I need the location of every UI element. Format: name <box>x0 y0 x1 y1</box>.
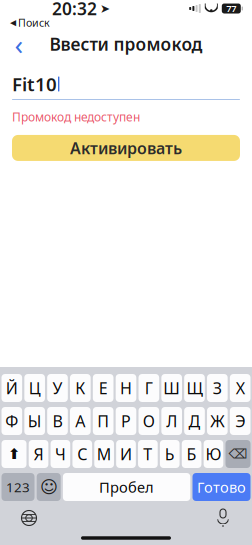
button[interactable]: Р <box>116 407 136 435</box>
button[interactable]: Я <box>29 440 48 468</box>
button[interactable]: Э <box>230 407 250 435</box>
staticText: О <box>143 410 155 432</box>
staticText: Ю <box>205 443 221 465</box>
button[interactable]: П <box>93 407 113 435</box>
button[interactable]: Г <box>138 374 159 402</box>
staticText: Т <box>143 443 152 465</box>
button[interactable]: Пробел <box>63 473 190 501</box>
button[interactable]: И <box>116 440 136 468</box>
button[interactable]: Удалить <box>225 440 250 468</box>
button[interactable]: М <box>94 440 114 468</box>
staticText: У <box>52 377 62 399</box>
button[interactable]: Ч <box>51 440 70 468</box>
staticText: ☺ <box>40 477 58 497</box>
button[interactable]: С <box>72 440 92 468</box>
staticText: Промокод недоступен <box>12 109 140 125</box>
staticText: ⬆ <box>8 446 20 462</box>
button[interactable]: Ы <box>24 407 45 435</box>
staticText: ◀ <box>10 18 16 27</box>
staticText: Щ <box>186 377 202 399</box>
staticText: ‹ <box>14 25 23 63</box>
button[interactable]: Б <box>182 440 201 468</box>
staticText: Й <box>6 377 18 399</box>
button[interactable]: З <box>207 374 228 402</box>
button[interactable]: 123 <box>1 473 34 501</box>
staticText: Х <box>236 377 245 399</box>
staticText: Ввести промокод <box>49 32 202 55</box>
staticText: А <box>75 410 85 432</box>
staticText: Ш <box>163 377 180 399</box>
staticText: Л <box>166 410 177 432</box>
staticText: Ь <box>165 443 175 465</box>
button[interactable]: Диктовка <box>208 506 238 530</box>
staticText: Ф <box>5 410 18 432</box>
staticText: Активировать <box>70 137 182 158</box>
button[interactable]: Х <box>230 374 250 402</box>
staticText: Я <box>33 443 43 465</box>
button[interactable]: О <box>138 407 159 435</box>
button[interactable]: Ф <box>1 407 22 435</box>
button[interactable]: Н <box>116 374 136 402</box>
staticText: 20:32 <box>52 0 97 20</box>
button[interactable]: Т <box>138 440 158 468</box>
button[interactable]: Щ <box>184 374 205 402</box>
staticText: С <box>77 443 87 465</box>
button[interactable]: Ж <box>207 407 228 435</box>
staticText: В <box>52 410 62 432</box>
staticText: Ц <box>29 377 41 399</box>
button[interactable]: Готово <box>192 473 250 501</box>
button[interactable]: Ц <box>24 374 45 402</box>
staticText: Э <box>235 410 245 432</box>
staticText: ⌫ <box>228 446 247 461</box>
button[interactable]: Сменить язык <box>14 506 44 530</box>
staticText: З <box>213 377 222 399</box>
staticText: Ч <box>55 443 66 465</box>
staticText: Г <box>145 377 153 399</box>
button[interactable]: Shift <box>1 440 26 468</box>
staticText: Ы <box>28 410 42 432</box>
staticText: Fit10 <box>12 72 57 96</box>
staticText: Ж <box>210 410 224 432</box>
staticText: Н <box>120 377 132 399</box>
button[interactable]: Ю <box>204 440 223 468</box>
staticText: Готово <box>197 477 246 497</box>
staticText: П <box>97 410 109 432</box>
button[interactable]: А <box>70 407 91 435</box>
button[interactable]: Активировать <box>0 135 252 161</box>
button[interactable]: Л <box>161 407 182 435</box>
button[interactable]: Ш <box>161 374 182 402</box>
staticText: К <box>75 377 85 399</box>
staticText: И <box>120 443 132 465</box>
staticText: Е <box>99 377 108 399</box>
staticText: ➤ <box>100 2 110 15</box>
staticText: Р <box>121 410 131 432</box>
button[interactable]: Е <box>93 374 113 402</box>
staticText: 77 <box>226 2 236 15</box>
button[interactable]: Д <box>184 407 205 435</box>
button[interactable]: Й <box>1 374 22 402</box>
button[interactable]: Эмодзи <box>37 473 61 501</box>
staticText: М <box>97 443 112 465</box>
staticText: Поиск <box>18 15 50 30</box>
button[interactable]: Ь <box>160 440 180 468</box>
button[interactable]: Назад <box>4 29 34 59</box>
staticText: Д <box>188 410 200 432</box>
button[interactable]: У <box>47 374 68 402</box>
staticText: Б <box>187 443 197 465</box>
staticText: 123 <box>6 478 30 496</box>
staticText: Пробел <box>99 477 154 497</box>
button[interactable]: В <box>47 407 68 435</box>
button[interactable]: К <box>70 374 91 402</box>
